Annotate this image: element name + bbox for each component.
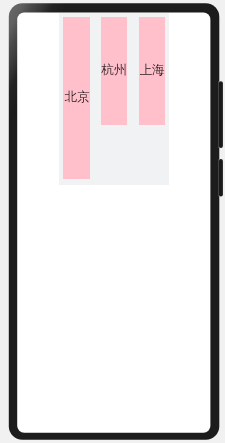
button[interactable]: 上海	[139, 17, 165, 125]
staticText: 上海	[139, 62, 165, 78]
other: Bar chart	[59, 13, 169, 185]
staticText: 杭州	[101, 62, 127, 78]
button[interactable]: 北京	[63, 17, 90, 179]
button[interactable]: 杭州	[101, 17, 127, 125]
button[interactable]: Power	[217, 159, 223, 196]
button[interactable]: Volume	[217, 81, 223, 148]
staticText: 北京	[64, 89, 90, 105]
